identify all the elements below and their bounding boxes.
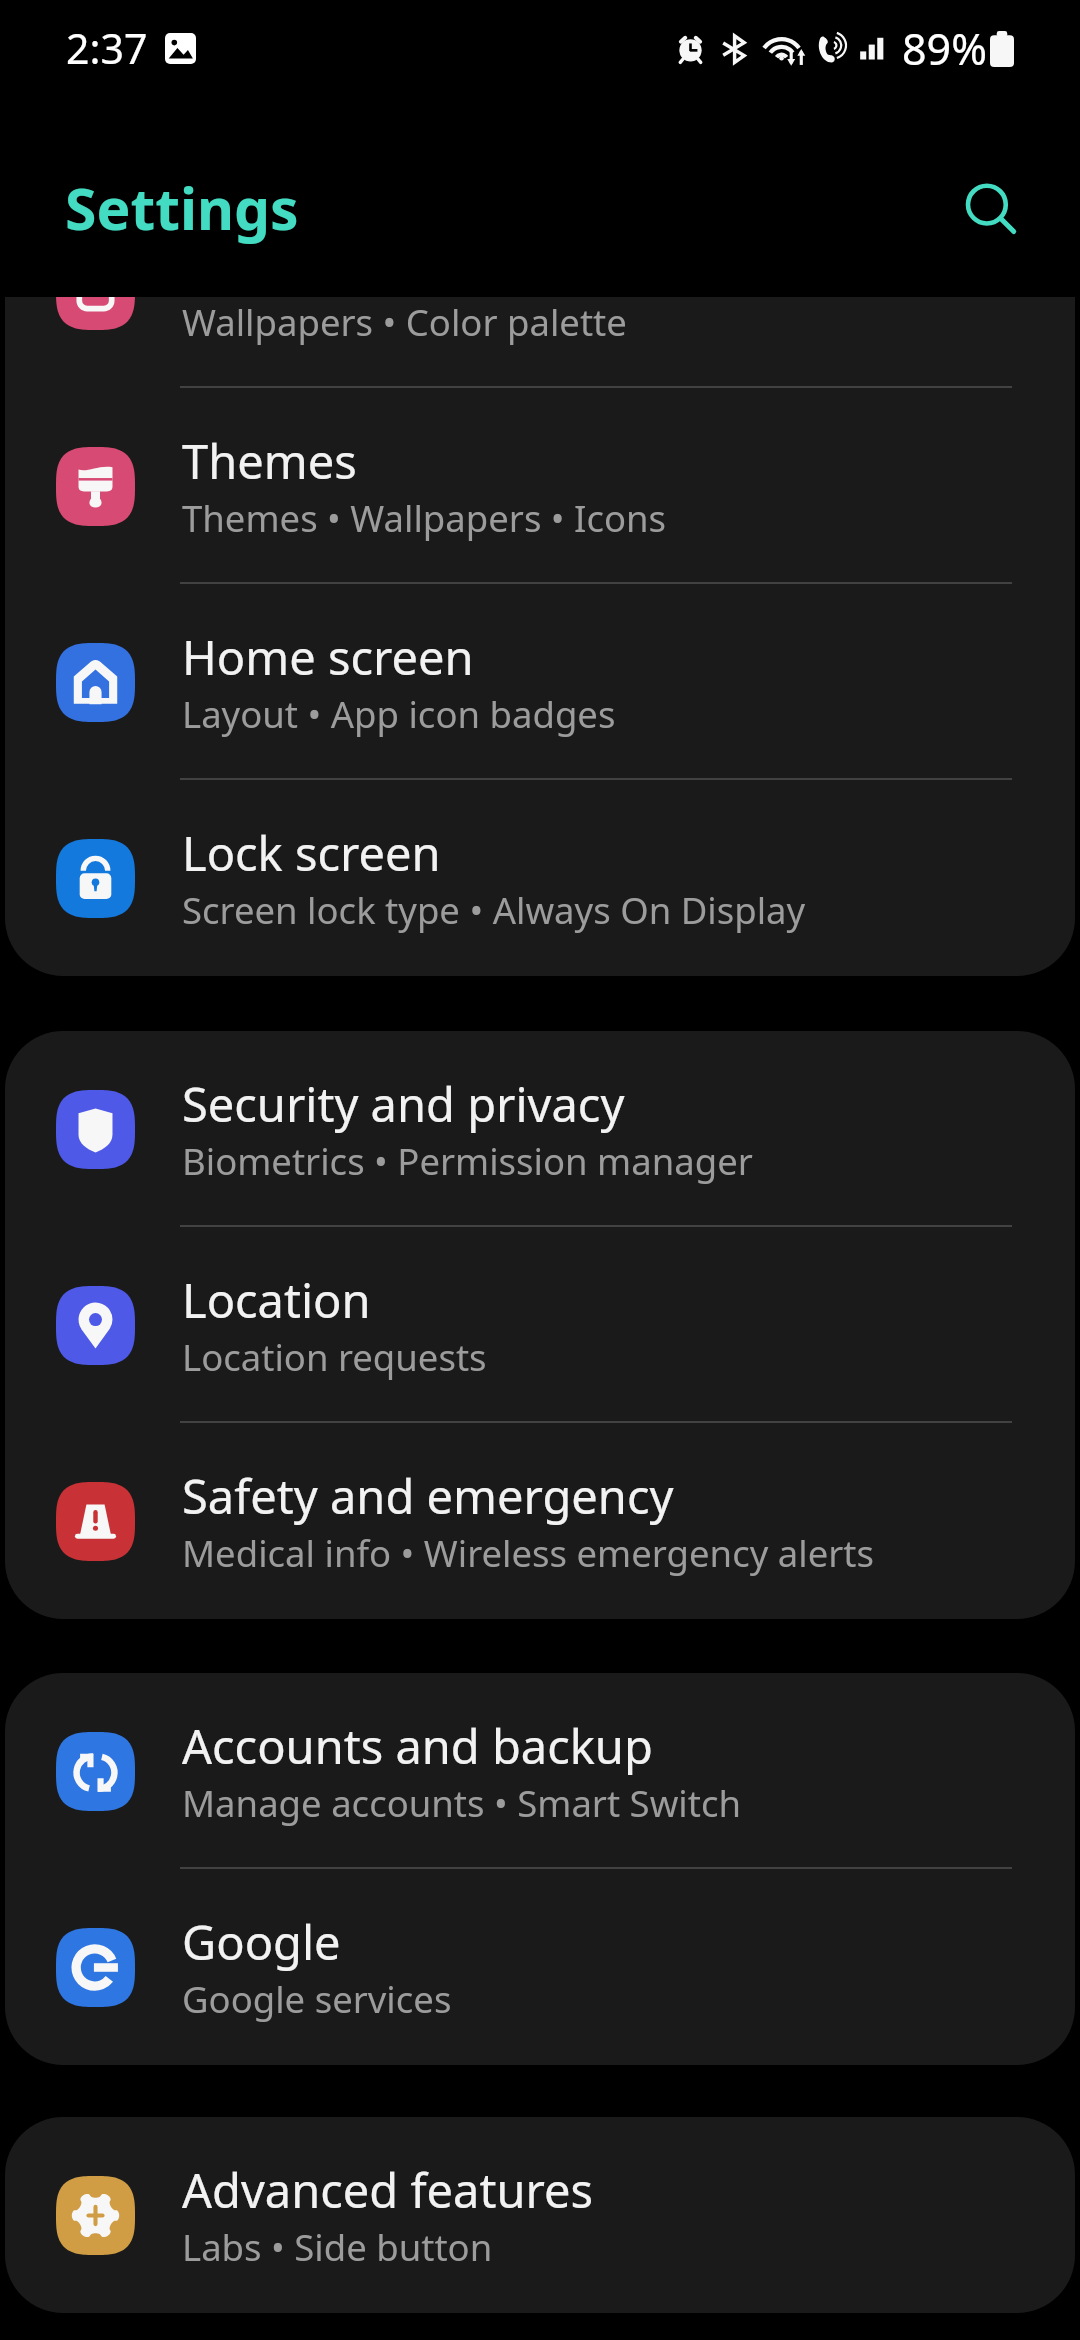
staticText: Accounts and backup [182,1714,653,1778]
staticText: Location requests [182,1332,487,1382]
staticText: 2:37 [66,20,148,76]
staticText: 89% [902,19,987,78]
staticText: Google services [182,1974,452,2024]
button[interactable]: Lock screen [5,780,1075,976]
staticText: Wallpapers • Color palette [182,297,627,347]
button[interactable]: Home screen [5,584,1075,780]
staticText: Lock screen [182,821,441,885]
staticText: Location [182,1268,371,1332]
staticText: Settings [65,169,299,247]
staticText: Layout • App icon badges [182,689,616,739]
staticText: Labs • Side button [182,2222,493,2272]
staticText: Biometrics • Permission manager [182,1136,753,1186]
staticText: Medical info • Wireless emergency alerts [182,1528,874,1578]
button[interactable]: Location [5,1227,1075,1423]
button[interactable]: Search [944,163,1040,259]
staticText: Home screen [182,625,474,689]
staticText: Google [182,1910,341,1974]
staticText: Themes • Wallpapers • Icons [182,493,667,543]
staticText: Themes [182,429,357,493]
staticText: Manage accounts • Smart Switch [182,1778,741,1828]
button[interactable]: Themes [5,388,1075,584]
staticText: Advanced features [182,2158,593,2222]
button[interactable]: Accounts and backup [5,1673,1075,1869]
button[interactable]: Safety and emergency [5,1423,1075,1619]
staticText: Screen lock type • Always On Display [182,885,806,935]
staticText: Safety and emergency [182,1464,674,1528]
button[interactable]: Wallpaper [5,297,1075,388]
button[interactable]: Advanced features [5,2117,1075,2313]
button[interactable]: Security and privacy [5,1031,1075,1227]
button[interactable]: Google [5,1869,1075,2065]
staticText: Security and privacy [182,1072,625,1136]
